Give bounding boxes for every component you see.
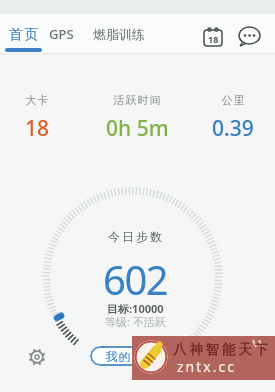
- staticText: zntx.cc: [177, 357, 236, 376]
- button[interactable]: 燃脂训练: [90, 18, 148, 50]
- staticText: 602: [103, 252, 168, 298]
- button[interactable]: [237, 25, 263, 49]
- button[interactable]: GPS: [41, 18, 81, 50]
- staticText: 八神智能天下: [173, 341, 271, 358]
- staticText: 18: [25, 114, 50, 142]
- button[interactable]: 首页: [3, 18, 43, 52]
- staticText: 目标:10000: [107, 301, 164, 316]
- staticText: 今日步数: [107, 229, 163, 244]
- staticText: 公里: [221, 93, 245, 107]
- staticText: 0h 5m: [106, 114, 169, 142]
- staticText: 大卡: [25, 93, 49, 107]
- button[interactable]: 我的一天: [90, 346, 185, 366]
- button[interactable]: 18: [200, 24, 226, 50]
- staticText: 燃脂训练: [93, 26, 145, 42]
- staticText: 首页: [8, 26, 39, 44]
- staticText: GPS: [49, 25, 74, 43]
- staticText: 0.39: [212, 114, 254, 142]
- button[interactable]: [26, 346, 48, 368]
- staticText: 活跃时间: [113, 93, 161, 107]
- staticText: 18: [208, 33, 219, 45]
- staticText: 等级: 不活跃: [105, 314, 166, 329]
- staticText: 我的一天: [105, 349, 157, 364]
